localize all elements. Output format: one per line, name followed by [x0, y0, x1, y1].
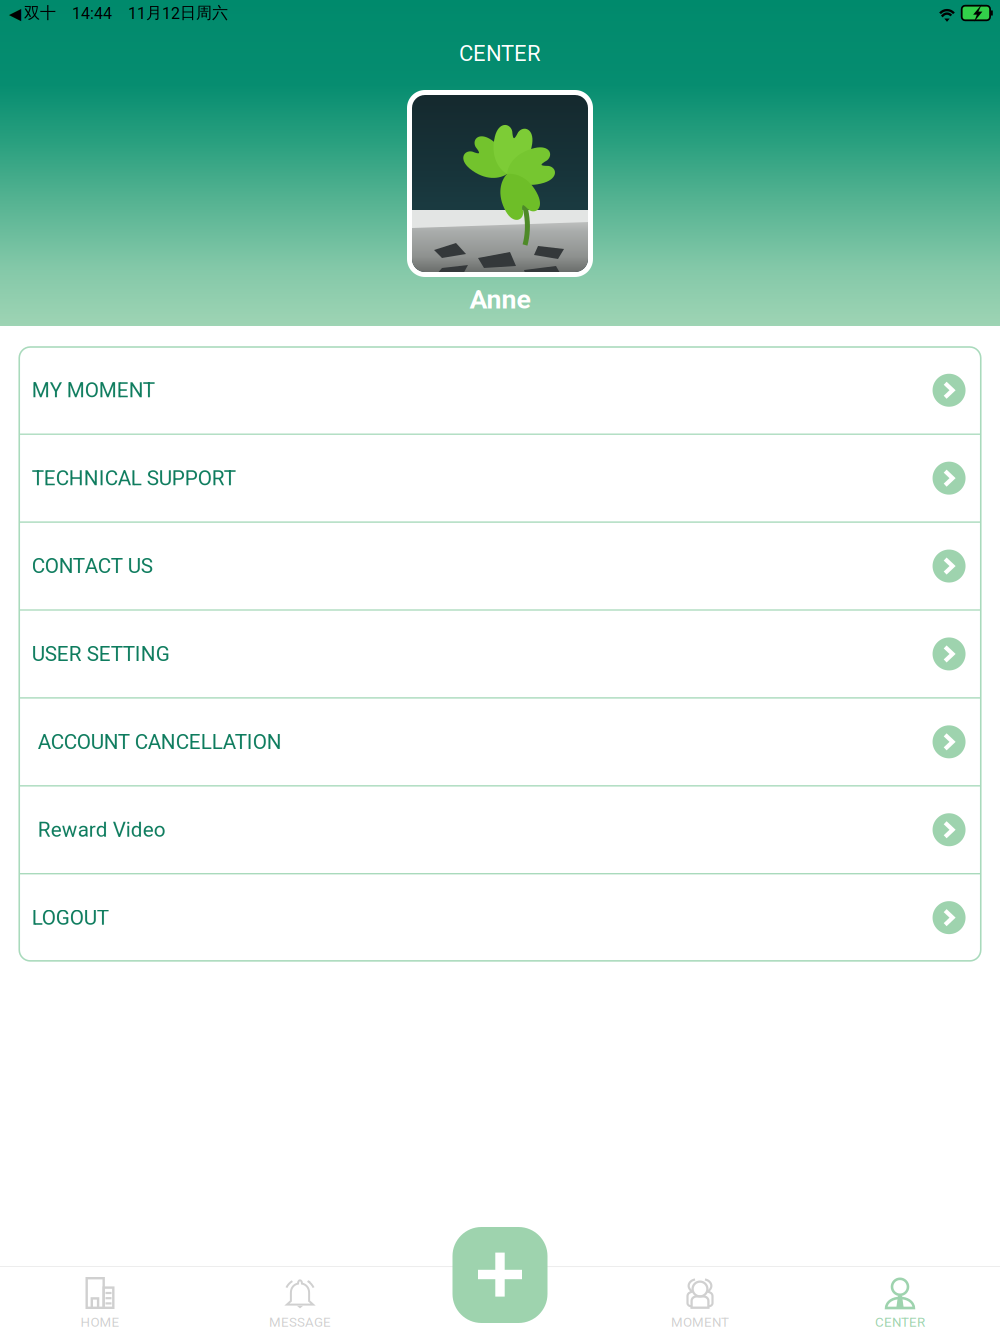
- staticText: CONTACT US: [32, 554, 153, 578]
- staticText: LOGOUT: [32, 905, 109, 930]
- button[interactable]: Add: [452, 1227, 547, 1323]
- staticText: MOMENT: [671, 1314, 729, 1330]
- staticText: CENTER: [875, 1314, 925, 1330]
- button[interactable]: TECHNICAL SUPPORT: [19, 435, 981, 521]
- staticText: ACCOUNT CANCELLATION: [38, 730, 282, 754]
- staticText: ◀ 双十 14:44 11月12日周六: [9, 3, 228, 23]
- button[interactable]: HOME: [0, 1267, 200, 1334]
- staticText: CENTER: [459, 41, 541, 66]
- button[interactable]: USER SETTING: [19, 611, 981, 697]
- staticText: TECHNICAL SUPPORT: [32, 466, 236, 490]
- button[interactable]: CONTACT US: [19, 523, 981, 609]
- button[interactable]: MOMENT: [600, 1267, 800, 1334]
- button[interactable]: CENTER: [800, 1267, 1000, 1334]
- staticText: Anne: [469, 284, 530, 315]
- button[interactable]: Reward Video: [19, 786, 981, 873]
- staticText: MY MOMENT: [32, 378, 155, 402]
- staticText: USER SETTING: [32, 642, 170, 666]
- staticText: MESSAGE: [269, 1314, 331, 1330]
- button[interactable]: MY MOMENT: [19, 347, 981, 433]
- button[interactable]: LOGOUT: [19, 874, 981, 961]
- button[interactable]: MESSAGE: [200, 1267, 400, 1334]
- button[interactable]: ACCOUNT CANCELLATION: [19, 699, 981, 785]
- staticText: HOME: [80, 1314, 119, 1330]
- staticText: Reward Video: [38, 818, 166, 842]
